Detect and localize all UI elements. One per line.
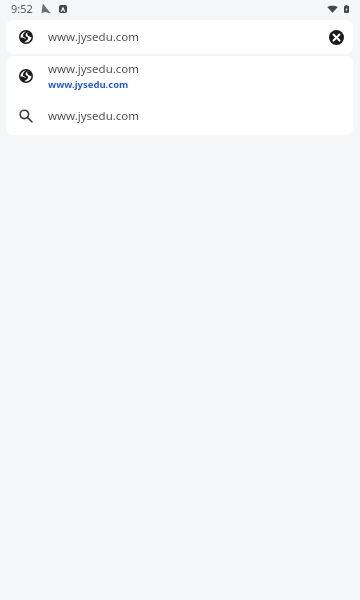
button[interactable]: Address bar [6, 20, 353, 54]
button[interactable]: www.jysedu.com [6, 56, 353, 96]
staticText: www.jysedu.com [48, 61, 140, 77]
staticText: www.jysedu.com [48, 78, 129, 91]
staticText: www.jysedu.com [48, 29, 140, 45]
button[interactable]: Clear text [324, 25, 348, 49]
staticText: 9:52 [11, 1, 33, 16]
button[interactable]: www.jysedu.com [6, 96, 353, 135]
staticText: www.jysedu.com [48, 108, 140, 124]
